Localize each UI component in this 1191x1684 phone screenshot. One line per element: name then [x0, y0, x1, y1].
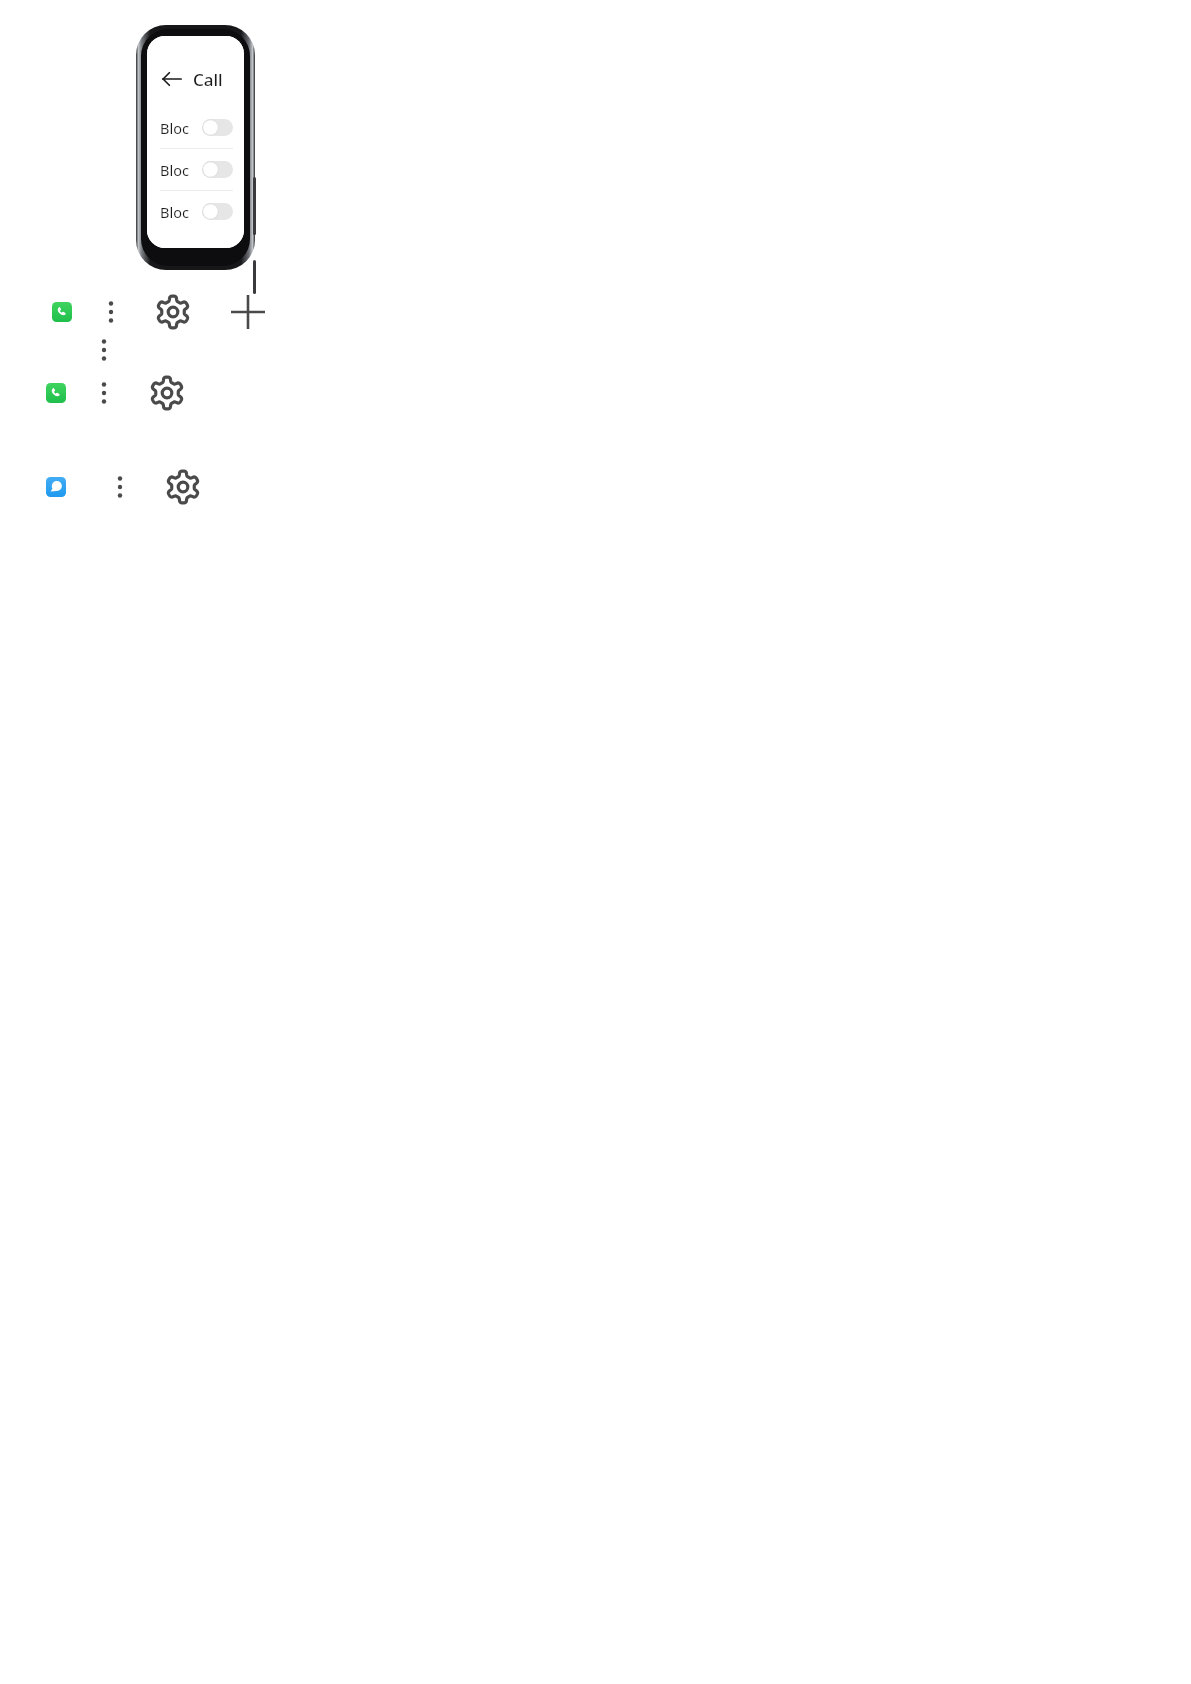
button[interactable]: More options — [106, 473, 134, 501]
staticText: Block all incoming calls — [160, 118, 196, 138]
button[interactable]: Block private/withheld numbers — [160, 191, 233, 232]
button[interactable]: Add — [230, 294, 266, 330]
button[interactable]: Phone app — [52, 302, 72, 322]
button[interactable]: Phone app — [46, 383, 66, 403]
button[interactable]: Messages app — [46, 477, 66, 497]
button[interactable]: Block unknown numbers — [160, 149, 233, 190]
button[interactable]: More options — [97, 298, 125, 326]
staticText: Call block rules — [193, 68, 233, 91]
button[interactable]: Settings — [155, 294, 191, 330]
button[interactable]: Settings — [165, 469, 201, 505]
button[interactable]: Toggle off — [202, 119, 233, 136]
button[interactable]: Block all incoming calls — [160, 107, 233, 148]
button[interactable]: Settings — [149, 375, 185, 411]
button[interactable]: Back — [160, 67, 184, 91]
staticText: Block private/withheld numbers — [160, 202, 196, 222]
button[interactable]: More options — [90, 336, 118, 364]
button[interactable]: More options — [90, 379, 118, 407]
button[interactable]: Toggle off — [202, 161, 233, 178]
button[interactable]: Toggle off — [202, 203, 233, 220]
staticText: Block unknown numbers — [160, 160, 196, 180]
